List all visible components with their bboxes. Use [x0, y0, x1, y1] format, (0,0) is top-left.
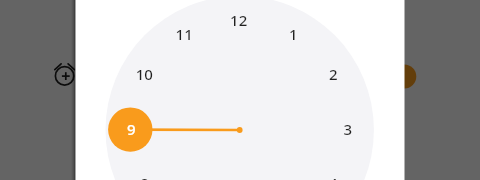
button[interactable]: 9 o'clock — [115, 114, 147, 146]
button[interactable]: 1 o'clock — [278, 20, 310, 52]
button[interactable]: 11 o'clock — [169, 20, 201, 52]
button[interactable]: 2 o'clock — [318, 60, 350, 92]
button[interactable]: 8 o'clock — [129, 168, 161, 180]
button[interactable]: 4 o'clock — [318, 169, 350, 180]
button[interactable]: 3 o'clock — [333, 114, 365, 146]
button[interactable]: 10 o'clock — [129, 59, 161, 91]
button[interactable]: Add alarm — [52, 64, 77, 89]
button[interactable]: 12 o'clock — [224, 5, 256, 37]
button[interactable]: New alarm — [392, 64, 417, 89]
